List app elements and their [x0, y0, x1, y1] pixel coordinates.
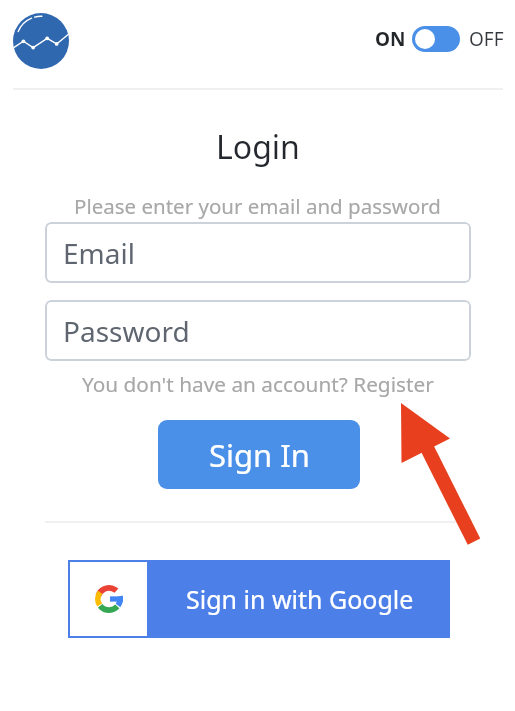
button[interactable]: Email	[45, 222, 471, 283]
button[interactable]: Password	[45, 300, 471, 361]
staticText: OFF	[469, 26, 504, 52]
button[interactable]: ON OFF toggle	[412, 26, 460, 52]
button[interactable]: Sign in with Google	[68, 560, 450, 638]
staticText: Please enter your email and password	[74, 192, 441, 220]
staticText: Email	[63, 234, 135, 272]
staticText: Sign in with Google	[186, 582, 414, 616]
button[interactable]: You don't have an account? Register	[82, 370, 434, 398]
button[interactable]: Sign In	[158, 420, 360, 489]
staticText: Login	[216, 125, 300, 169]
button[interactable]: App logo	[13, 13, 69, 69]
staticText: Sign In	[209, 434, 310, 476]
staticText: Password	[63, 312, 190, 350]
staticText: ON	[375, 26, 406, 52]
